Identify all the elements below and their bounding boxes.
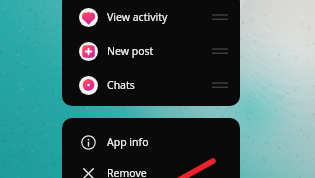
button[interactable]: Drag handle bbox=[211, 78, 229, 92]
staticText: Chats bbox=[107, 78, 135, 92]
button[interactable]: Drag handle bbox=[211, 44, 229, 58]
staticText: App info bbox=[107, 135, 149, 149]
button[interactable]: App info bbox=[62, 126, 240, 157]
button[interactable]: Chats bbox=[62, 68, 240, 102]
staticText: Remove bbox=[107, 166, 147, 178]
staticText: View activity bbox=[107, 10, 168, 24]
button[interactable]: Remove bbox=[62, 157, 240, 178]
button[interactable]: Drag handle bbox=[211, 10, 229, 24]
button[interactable]: New post bbox=[62, 34, 240, 68]
staticText: New post bbox=[107, 44, 154, 58]
button[interactable]: View activity bbox=[62, 0, 240, 34]
